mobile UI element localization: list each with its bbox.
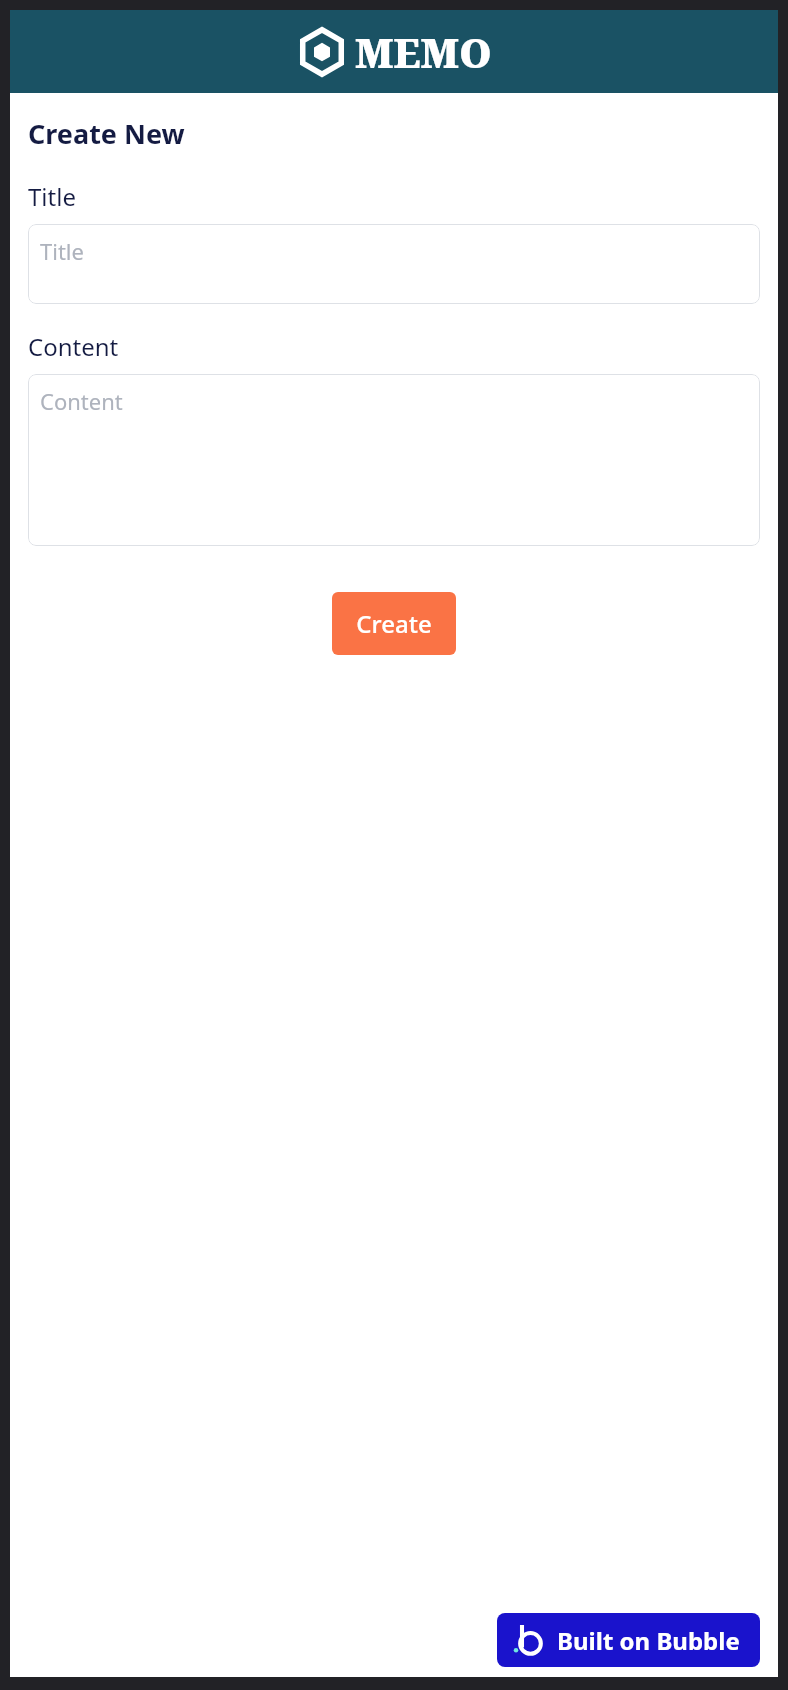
button[interactable]: Content [28,374,760,546]
staticText: Content [28,330,119,363]
button[interactable]: Title [28,224,760,304]
staticText: Create [356,607,432,640]
staticText: Create New [28,115,185,152]
staticText: Title [40,236,84,266]
staticText: Title [28,180,76,213]
staticText: Content [40,386,123,416]
staticText: MEMO [355,25,492,79]
staticText: Built on Bubble [557,1624,740,1657]
button[interactable]: Create [332,592,456,655]
button[interactable]: Built on Bubble [497,1613,760,1667]
